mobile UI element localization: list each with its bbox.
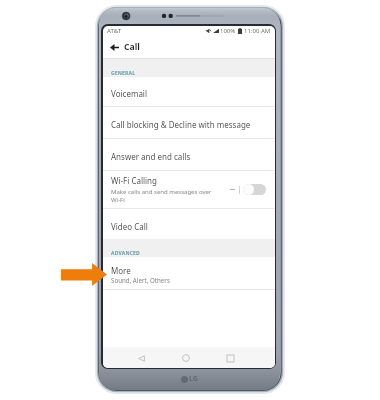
button[interactable]: More [103, 257, 275, 289]
button[interactable]: Home [178, 350, 194, 366]
button[interactable]: Answer and end calls [103, 139, 275, 170]
button[interactable]: Recents [222, 350, 238, 366]
staticText: GENERAL [111, 70, 136, 77]
staticText: LG [189, 374, 198, 384]
button[interactable]: Voicemail [103, 77, 275, 106]
button[interactable]: Wi-Fi Calling toggle [243, 184, 266, 195]
staticText: More [111, 265, 131, 276]
staticText: Voicemail [111, 88, 147, 99]
staticText: Sound, Alert, Others [111, 276, 170, 284]
staticText: Video Call [111, 221, 148, 232]
staticText: Call blocking & Decline with message [111, 119, 251, 130]
staticText: Call [124, 41, 140, 53]
staticText: ADVANCED [111, 250, 140, 257]
button[interactable]: Video Call [103, 209, 275, 239]
staticText: Answer and end calls [111, 151, 191, 162]
button[interactable]: Call blocking & Decline with message [103, 107, 275, 138]
staticText: 11:00 AM [244, 27, 271, 35]
staticText: AT&T [107, 27, 121, 35]
staticText: Wi-Fi Calling [111, 175, 157, 186]
other: Pointer arrow [61, 263, 107, 286]
button[interactable]: Back [106, 39, 122, 55]
staticText: Make calls and send messages over Wi-Fi [111, 188, 213, 204]
button[interactable]: Wi-Fi Calling [103, 171, 275, 208]
button[interactable]: Back [133, 350, 149, 366]
staticText: 100% [220, 27, 236, 35]
